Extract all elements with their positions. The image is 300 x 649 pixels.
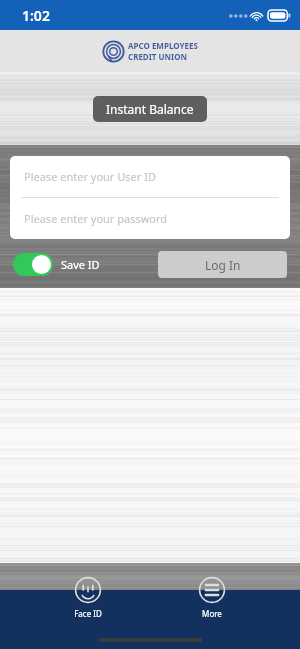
staticText: Save ID xyxy=(61,257,100,272)
button[interactable]: Please enter your password xyxy=(10,198,290,239)
staticText: Please enter your password xyxy=(24,211,168,226)
button[interactable]: Instant Balance xyxy=(93,96,207,122)
staticText: More xyxy=(202,608,222,619)
staticText: APCO EMPLOYEES xyxy=(128,40,198,51)
staticText: Face ID xyxy=(74,608,102,619)
staticText: Instant Balance xyxy=(106,101,194,117)
staticText: Please enter your User ID xyxy=(24,169,156,184)
staticText: Log In xyxy=(205,257,241,273)
button[interactable]: Save ID xyxy=(13,253,100,276)
staticText: 1:02 xyxy=(22,6,50,25)
button[interactable]: Please enter your User ID xyxy=(10,156,290,197)
button[interactable]: Log In xyxy=(158,251,287,278)
button[interactable]: More xyxy=(177,576,247,619)
button[interactable]: Face ID xyxy=(53,576,123,619)
staticText: CREDIT UNION xyxy=(128,51,188,62)
